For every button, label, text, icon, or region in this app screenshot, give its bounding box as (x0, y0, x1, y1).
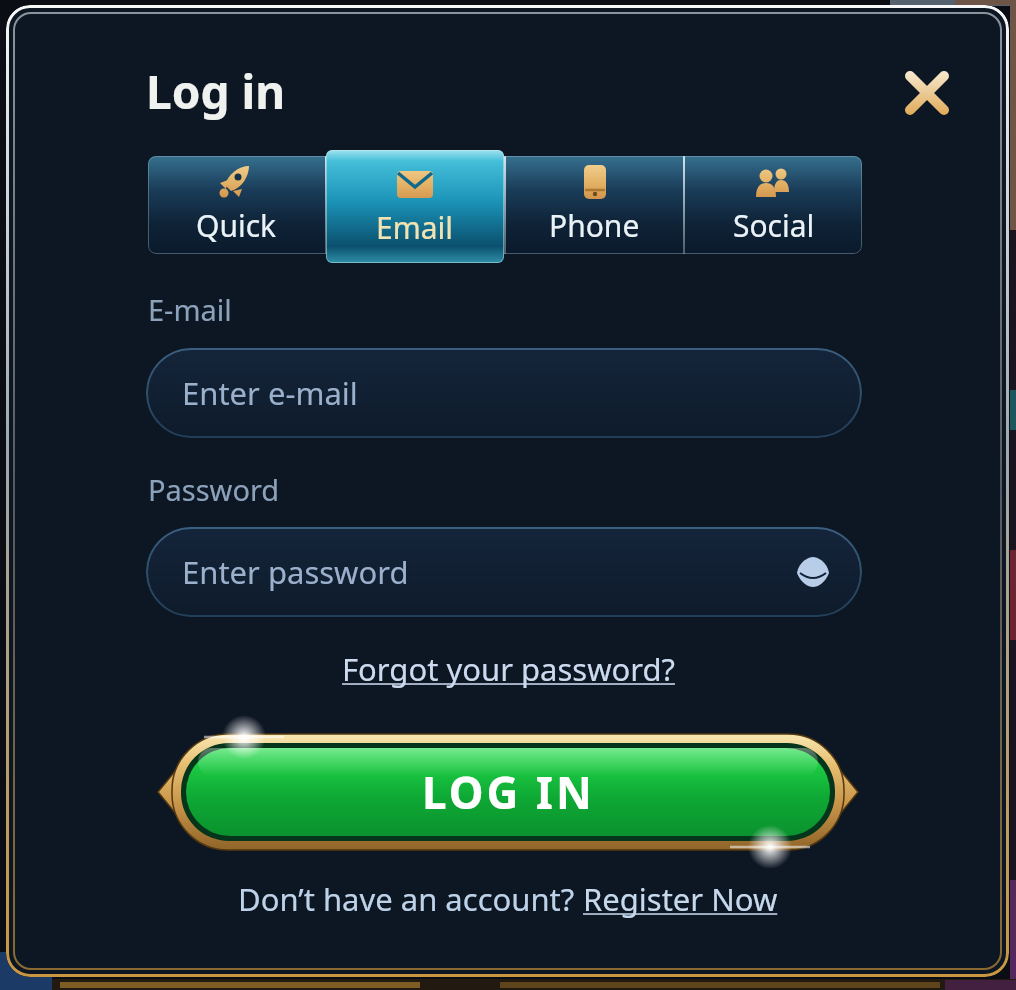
staticText: Phone (549, 205, 640, 246)
staticText: Password (148, 470, 280, 509)
staticText: LOG IN (422, 762, 595, 822)
staticText: E-mail (148, 290, 232, 329)
button[interactable]: Quick (148, 156, 325, 254)
button[interactable]: Enter e-mail (146, 348, 862, 438)
staticText: Email (376, 207, 454, 248)
staticText: Enter e-mail (182, 372, 358, 414)
staticText: Social (733, 205, 815, 246)
button[interactable]: Forgot your password? (342, 648, 675, 690)
staticText: Enter password (182, 551, 409, 593)
button[interactable] (903, 69, 951, 117)
button[interactable]: Email (326, 150, 504, 263)
staticText: Log in (146, 60, 286, 123)
staticText: Quick (196, 205, 277, 246)
button[interactable]: LOG IN (158, 734, 858, 850)
staticText: Don’t have an account? (238, 878, 583, 920)
button[interactable]: Phone (506, 156, 683, 254)
button[interactable]: Social (685, 156, 862, 254)
button[interactable]: Register Now (583, 878, 778, 920)
button[interactable]: Enter password (146, 527, 862, 617)
